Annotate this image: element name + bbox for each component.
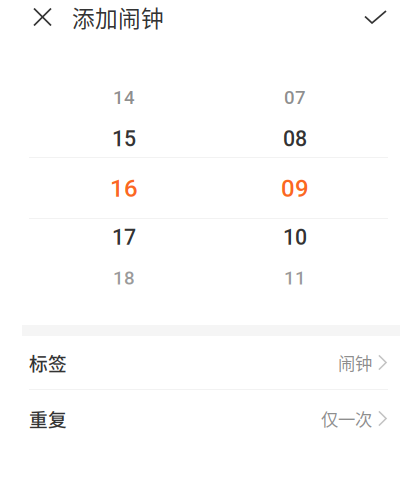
staticText: 07 (284, 87, 306, 108)
staticText: 15 (112, 126, 136, 151)
staticText: 14 (113, 87, 135, 108)
button[interactable]: Done (357, 3, 394, 31)
button[interactable]: Close (26, 0, 59, 33)
button[interactable]: 重复 (0, 390, 400, 447)
staticText: 闹钟 (338, 350, 372, 375)
staticText: 11 (284, 267, 306, 289)
staticText: 10 (283, 225, 307, 250)
staticText: 17 (112, 225, 136, 250)
staticText: 标签 (29, 349, 67, 376)
staticText: 09 (281, 174, 309, 202)
staticText: 16 (110, 174, 138, 202)
staticText: 重复 (29, 405, 67, 432)
staticText: 18 (113, 267, 135, 289)
button[interactable]: 标签 (0, 336, 400, 389)
staticText: 08 (283, 126, 307, 151)
staticText: 添加闹钟 (72, 1, 164, 33)
staticText: 仅一次 (321, 406, 372, 431)
